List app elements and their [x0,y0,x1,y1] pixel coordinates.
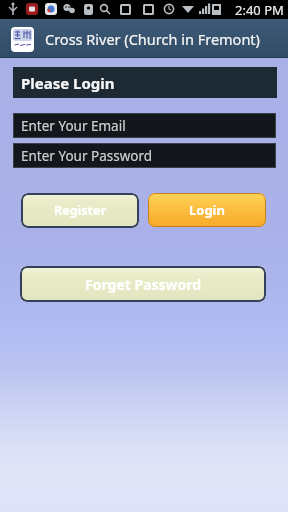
button[interactable]: Enter Your Email [13,113,276,138]
button[interactable]: Forget Password [20,266,266,302]
button[interactable]: Register [21,193,139,228]
staticText: 2:40 PM [235,1,284,19]
staticText: Please Login [21,73,115,93]
staticText: Cross River (Church in Fremont) [45,29,260,49]
button[interactable]: Login [148,193,266,227]
staticText: Login [189,201,225,219]
staticText: Enter Your Password [21,147,153,165]
button[interactable]: Enter Your Password [13,143,276,168]
staticText: Forget Password [85,275,202,294]
staticText: Enter Your Email [21,117,126,135]
staticText: Register [54,202,107,219]
